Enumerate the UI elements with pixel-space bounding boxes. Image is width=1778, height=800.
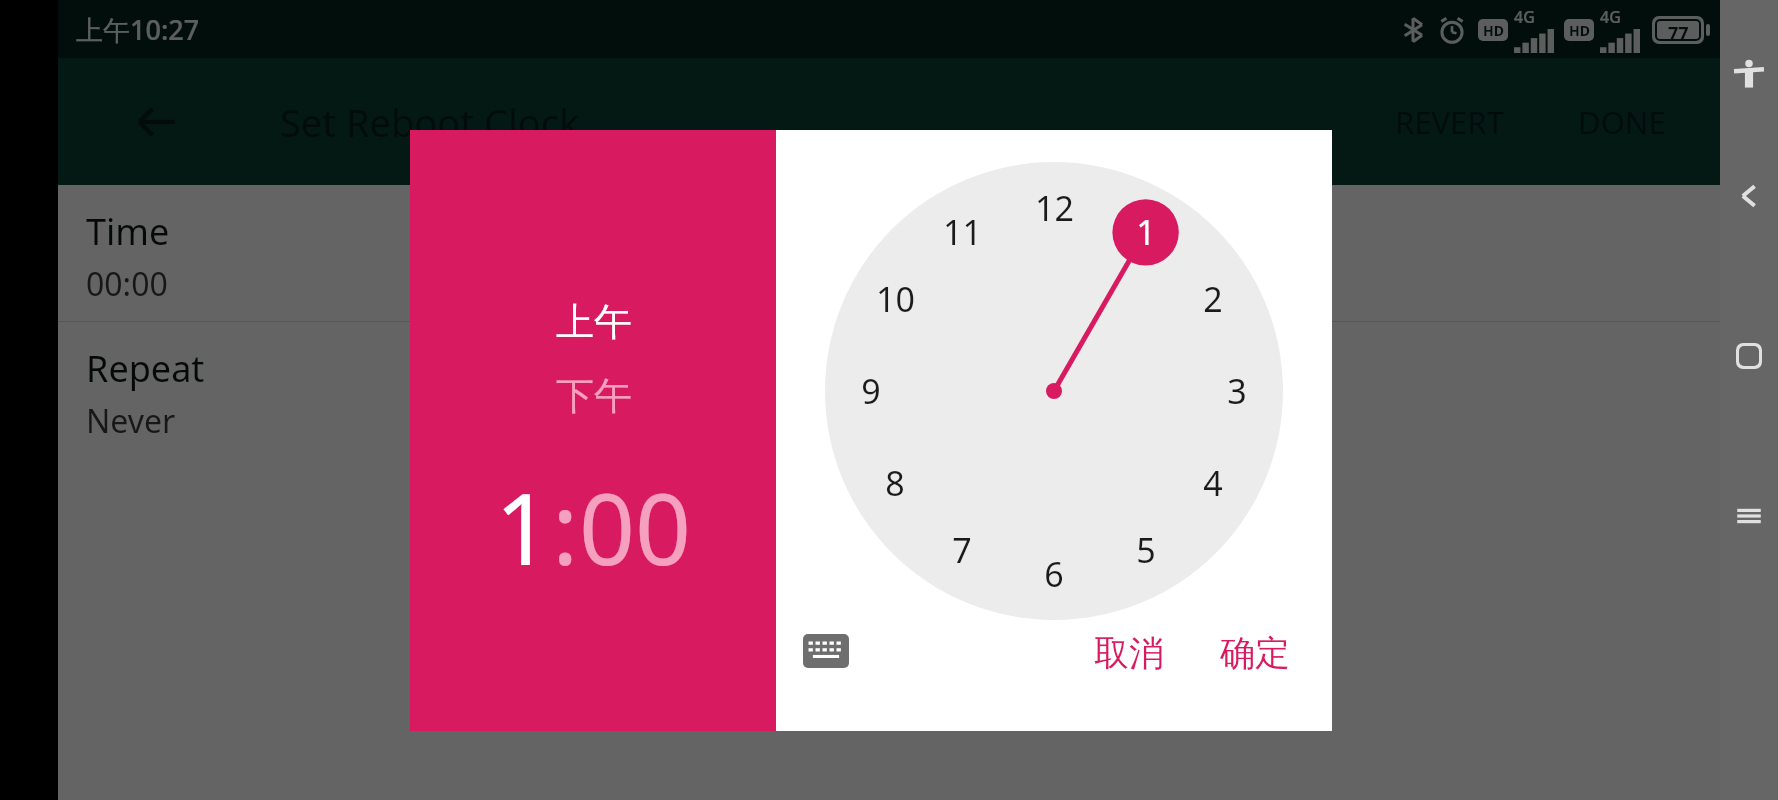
staticText: Repeat — [86, 344, 205, 393]
staticText: HD — [1569, 21, 1590, 40]
button[interactable]: 1 — [495, 460, 552, 593]
button[interactable]: Time — [58, 185, 1720, 321]
staticText: 5 — [1136, 527, 1156, 573]
staticText: : — [552, 460, 579, 593]
staticText: 2 — [1203, 276, 1223, 322]
staticText: 上午10:27 — [76, 11, 200, 48]
staticText: 6 — [1044, 551, 1064, 597]
button[interactable]: 6 — [1021, 541, 1087, 607]
staticText: Time — [86, 207, 170, 256]
button[interactable]: 上午 — [530, 292, 658, 352]
staticText: 4 — [1203, 460, 1223, 506]
button[interactable]: 4 — [1180, 450, 1246, 516]
button[interactable]: Repeat — [58, 322, 1720, 458]
staticText: 77 — [1668, 21, 1689, 39]
button[interactable]: 8 — [862, 450, 928, 516]
button[interactable]: Recents — [1725, 492, 1773, 540]
button[interactable]: 9 — [838, 358, 904, 424]
staticText: 4G — [1514, 6, 1535, 28]
staticText: 00:00 — [86, 262, 168, 306]
button[interactable]: 5 — [1113, 517, 1179, 583]
staticText: DONE — [1578, 101, 1666, 143]
staticText: 1 — [1136, 209, 1156, 255]
button[interactable]: 确定 — [1202, 619, 1308, 687]
button[interactable]: 下午 — [530, 366, 658, 426]
staticText: 取消 — [1094, 631, 1164, 675]
button[interactable]: 11 — [929, 199, 995, 265]
staticText: 3 — [1227, 368, 1247, 414]
staticText: 12 — [1035, 185, 1074, 231]
button[interactable]: 10 — [862, 266, 928, 332]
button[interactable]: 3 — [1204, 358, 1270, 424]
staticText: 9 — [861, 368, 881, 414]
staticText: 上午 — [556, 298, 632, 346]
staticText: REVERT — [1395, 101, 1504, 143]
button[interactable]: Back — [1725, 172, 1773, 220]
button[interactable]: Accessibility — [1725, 52, 1773, 100]
button[interactable]: 1 — [1113, 199, 1179, 265]
button[interactable]: 2 — [1180, 266, 1246, 332]
button[interactable]: Home — [1725, 332, 1773, 380]
staticText: 11 — [943, 209, 982, 255]
button[interactable]: 12 — [1021, 175, 1087, 241]
staticText: 4G — [1600, 6, 1621, 28]
button[interactable]: 取消 — [1076, 619, 1182, 687]
staticText: 1 — [495, 460, 552, 593]
staticText: 下午 — [556, 372, 632, 420]
staticText: Never — [86, 399, 176, 443]
staticText: Set Reboot Clock — [280, 96, 580, 148]
staticText: 8 — [885, 460, 905, 506]
button[interactable]: Switch to keyboard input — [798, 623, 854, 679]
staticText: HD — [1483, 21, 1504, 40]
button[interactable]: 00 — [579, 460, 692, 593]
button[interactable]: 7 — [929, 517, 995, 583]
staticText: 7 — [952, 527, 972, 573]
staticText: 确定 — [1220, 631, 1290, 675]
staticText: 10 — [876, 276, 915, 322]
staticText: 00 — [579, 460, 692, 593]
